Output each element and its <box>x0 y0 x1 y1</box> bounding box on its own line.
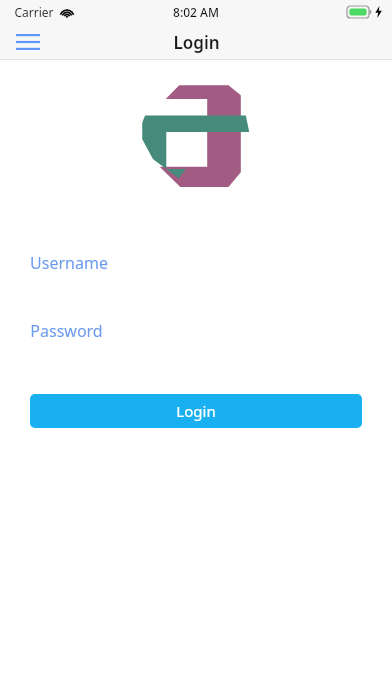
staticText: Carrier <box>14 4 54 20</box>
button[interactable]: Username <box>0 248 392 278</box>
button[interactable]: Password <box>0 316 392 346</box>
button[interactable]: Login <box>30 394 362 428</box>
staticText: Username <box>30 252 108 274</box>
staticText: Password <box>30 320 103 342</box>
staticText: 8:02 AM <box>173 4 219 20</box>
button[interactable]: Menu <box>8 25 48 59</box>
staticText: Login <box>176 401 216 421</box>
staticText: Login <box>173 31 220 54</box>
